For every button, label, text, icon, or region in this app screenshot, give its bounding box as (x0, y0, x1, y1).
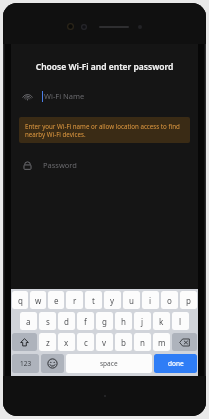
staticText: v (102, 337, 107, 348)
staticText: b (121, 337, 126, 348)
button[interactable]: w (30, 291, 46, 309)
staticText: Enter your Wi-Fi name or allow location … (25, 122, 184, 138)
button[interactable]: done (154, 354, 197, 373)
button[interactable]: a (20, 312, 37, 330)
staticText: f (84, 316, 87, 327)
button[interactable]: v (96, 333, 113, 351)
button[interactable]: r (66, 291, 83, 309)
button[interactable]: Backspace (172, 333, 197, 351)
button[interactable]: c (77, 333, 94, 351)
staticText: space (100, 359, 118, 368)
staticText: z (46, 337, 50, 348)
button[interactable]: h (115, 312, 132, 330)
button[interactable]: j (134, 312, 151, 330)
button[interactable]: d (58, 312, 75, 330)
button[interactable]: t (85, 291, 102, 309)
button[interactable]: o (161, 291, 178, 309)
staticText: Wi-Fi Name (44, 91, 85, 101)
button[interactable]: f (77, 312, 94, 330)
button[interactable]: e (48, 291, 64, 309)
staticText: g (102, 316, 107, 327)
button[interactable]: p (180, 291, 197, 309)
staticText: d (64, 316, 69, 327)
button[interactable]: i (142, 291, 159, 309)
staticText: done (168, 359, 184, 368)
button[interactable]: g (96, 312, 113, 330)
staticText: l (179, 316, 182, 327)
button[interactable]: m (153, 333, 170, 351)
staticText: Password (43, 160, 77, 170)
staticText: r (73, 295, 77, 306)
button[interactable]: z (39, 333, 56, 351)
staticText: a (26, 316, 31, 327)
button[interactable]: b (115, 333, 132, 351)
staticText: t (92, 295, 95, 306)
staticText: j (141, 316, 144, 327)
button[interactable]: y (104, 291, 121, 309)
staticText: s (46, 316, 50, 327)
staticText: u (129, 295, 134, 306)
button[interactable]: Wi-Fi Name (11, 86, 198, 106)
staticText: Choose Wi-Fi and enter password (11, 61, 198, 73)
button[interactable]: x (58, 333, 75, 351)
button[interactable]: s (39, 312, 56, 330)
staticText: h (121, 316, 126, 327)
staticText: k (159, 316, 164, 327)
staticText: 123 (20, 359, 32, 368)
staticText: y (110, 295, 115, 306)
button[interactable]: q (12, 291, 28, 309)
button[interactable]: n (134, 333, 151, 351)
button[interactable]: 123 (12, 354, 39, 373)
button[interactable]: Shift (12, 333, 37, 351)
staticText: p (186, 295, 191, 306)
staticText: x (64, 337, 69, 348)
staticText: m (158, 337, 166, 348)
button[interactable]: space (66, 354, 152, 373)
staticText: e (54, 295, 59, 306)
button[interactable]: k (153, 312, 170, 330)
staticText: c (84, 337, 88, 348)
staticText: o (167, 295, 172, 306)
button[interactable]: Password (11, 155, 198, 175)
staticText: w (35, 295, 42, 306)
button[interactable]: l (172, 312, 189, 330)
staticText: n (140, 337, 145, 348)
staticText: i (149, 295, 152, 306)
button[interactable]: Emoji (41, 354, 64, 373)
button[interactable]: u (123, 291, 140, 309)
staticText: q (18, 295, 23, 306)
